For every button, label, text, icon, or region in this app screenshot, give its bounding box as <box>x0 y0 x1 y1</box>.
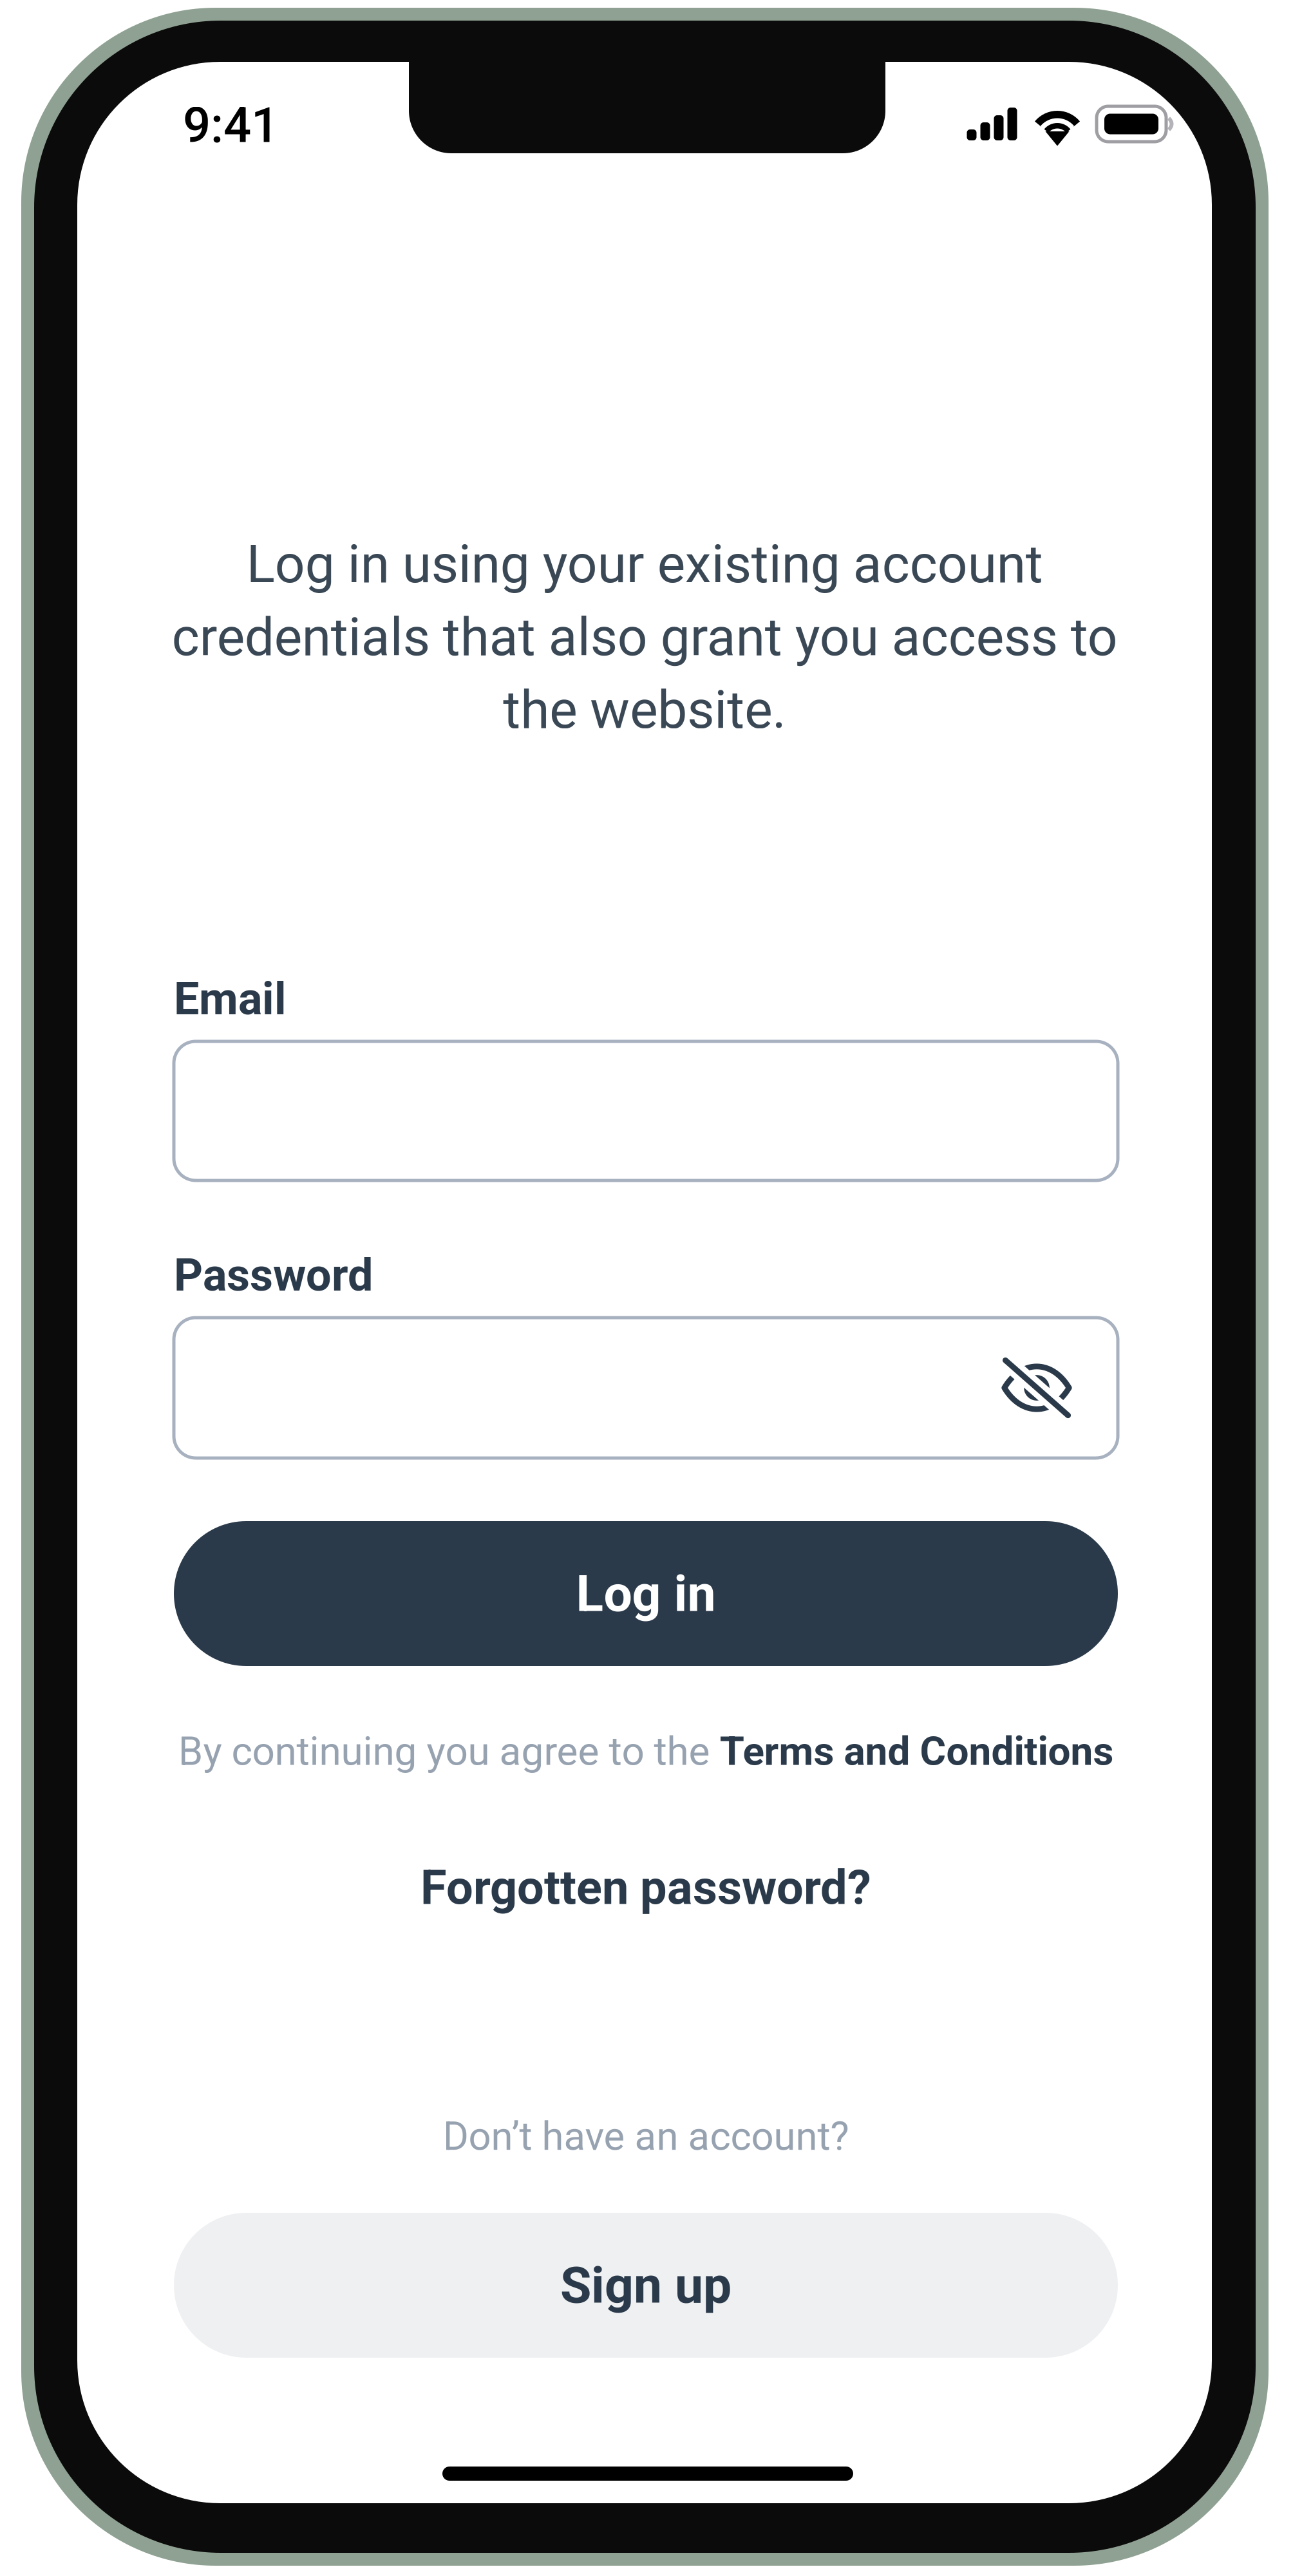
button[interactable]: Log in <box>174 1521 1118 1666</box>
button[interactable]: Sign up <box>174 2213 1118 2358</box>
button[interactable]: Show password <box>1002 1329 1118 1447</box>
staticText: Terms and Conditions <box>720 1728 1114 1775</box>
staticText: Email <box>174 972 287 1025</box>
staticText: 9:41 <box>183 97 279 154</box>
staticText: Log in <box>576 1564 716 1623</box>
staticText: By continuing you agree to the <box>178 1728 720 1775</box>
button[interactable]: By continuing you agree to the <box>174 1728 1118 1775</box>
staticText: Log in using your existing account crede… <box>172 533 1118 741</box>
staticText: Don’t have an account? <box>443 2113 849 2159</box>
button[interactable]: Forgotten password? <box>174 1860 1118 1916</box>
staticText: Forgotten password? <box>420 1860 871 1916</box>
staticText: Sign up <box>560 2256 731 2315</box>
staticText: Password <box>174 1249 373 1302</box>
